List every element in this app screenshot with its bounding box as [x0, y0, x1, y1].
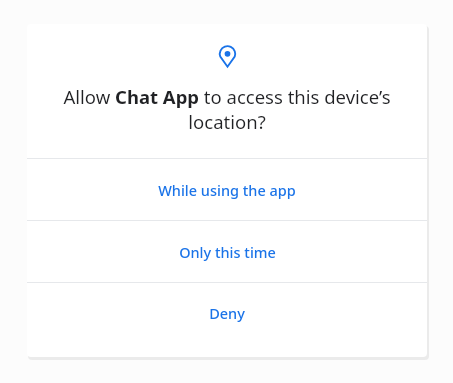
staticText: Only this time [179, 242, 276, 262]
button[interactable]: While using the app [27, 159, 427, 220]
button[interactable]: Only this time [27, 221, 427, 282]
staticText: While using the app [158, 180, 296, 200]
button[interactable]: Deny [27, 283, 427, 343]
staticText: Deny [209, 303, 245, 323]
staticText: Allow Chat App to access this device’s l… [43, 84, 411, 135]
other: Location [216, 45, 239, 68]
